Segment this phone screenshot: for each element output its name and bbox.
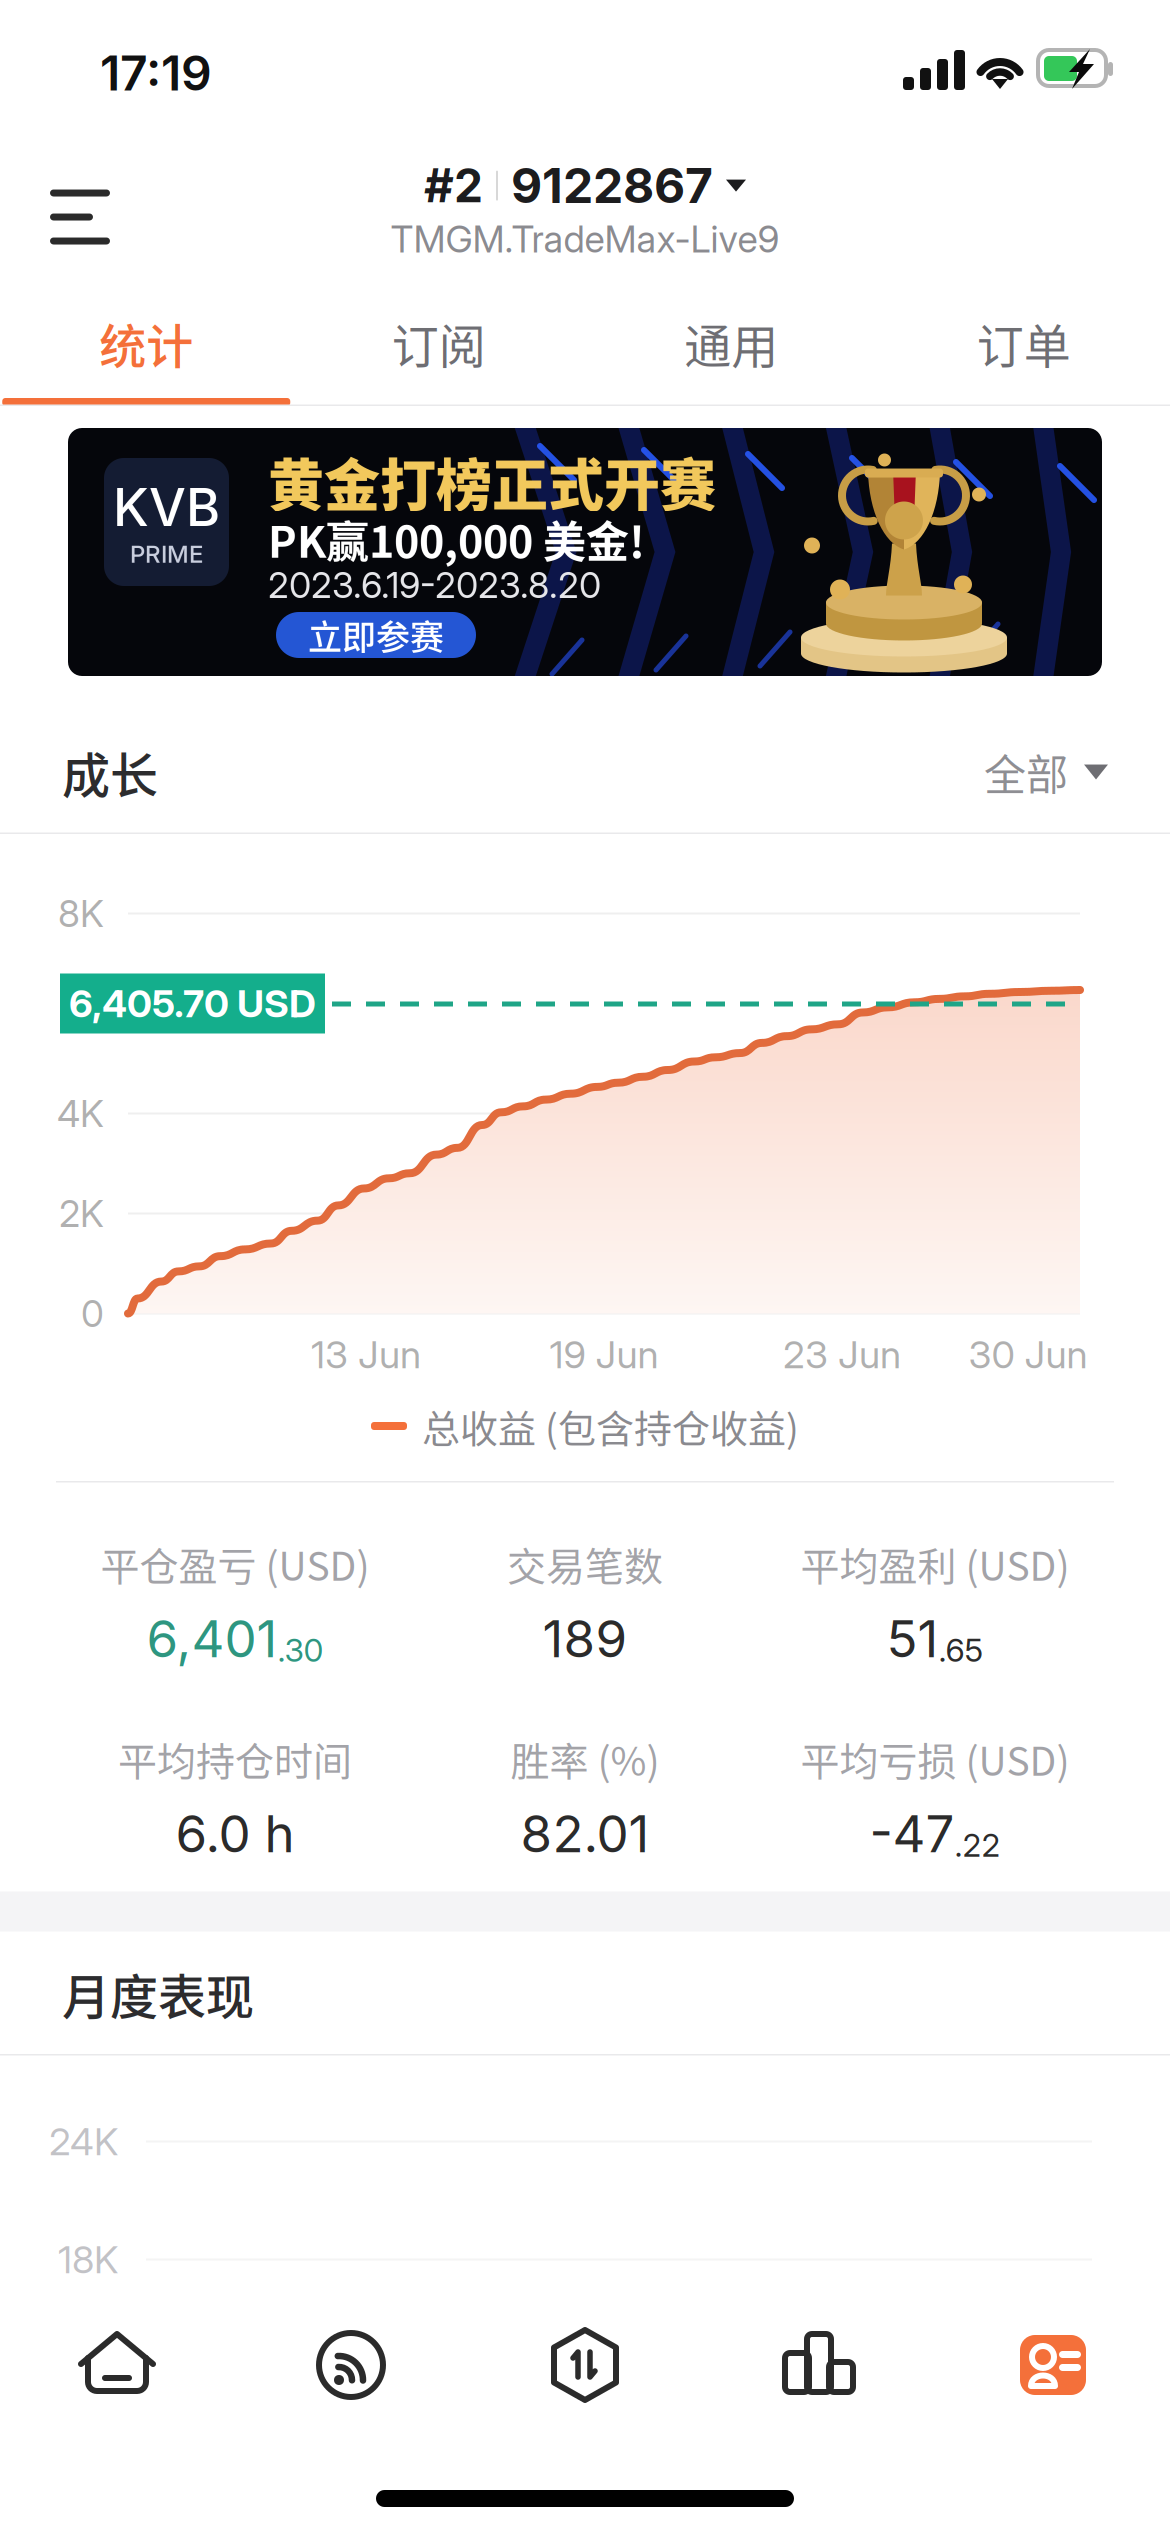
staticText: 6.0 h: [175, 1803, 294, 1865]
staticText: 平均盈利 (USD): [800, 1535, 1069, 1592]
button[interactable]: 订阅: [292, 288, 585, 406]
staticText: 18K: [58, 2236, 118, 2282]
staticText: 平均持仓时间: [118, 1730, 352, 1787]
staticText: TMGM.TradeMax-Live9: [390, 217, 779, 261]
button[interactable]: 统计: [0, 288, 292, 406]
staticText: 23 Jun: [783, 1331, 901, 1377]
button[interactable]: 订单: [877, 288, 1170, 406]
staticText: 0: [81, 1291, 104, 1336]
staticText: 胜率 (%): [510, 1730, 659, 1787]
staticText: 30 Jun: [968, 1331, 1087, 1377]
staticText: #2: [424, 158, 483, 213]
staticText: 189: [542, 1608, 627, 1670]
staticText: 平仓盈亏 (USD): [100, 1535, 369, 1592]
staticText: 月度表现: [62, 1959, 254, 2028]
staticText: 平均亏损 (USD): [800, 1730, 1069, 1787]
button[interactable]: Stats: [702, 2326, 936, 2404]
button[interactable]: 通用: [585, 288, 877, 406]
staticText: KVB: [113, 475, 220, 538]
staticText: 2023.6.19-2023.8.20: [268, 563, 601, 607]
staticText: .30: [277, 1631, 323, 1670]
staticText: 82.01: [520, 1803, 649, 1865]
staticText: 订单: [977, 309, 1071, 377]
staticText: PRIME: [130, 539, 203, 568]
staticText: 24K: [49, 2118, 118, 2164]
staticText: PK赢100,000 美金!: [268, 508, 645, 570]
staticText: .65: [938, 1631, 983, 1670]
button[interactable]: Account: [936, 2326, 1170, 2404]
staticText: 6,401: [146, 1608, 277, 1670]
staticText: 51: [886, 1608, 938, 1670]
staticText: 9122867: [511, 157, 713, 215]
staticText: 13 Jun: [311, 1331, 421, 1377]
staticText: 黄金打榜正式开赛: [268, 440, 716, 522]
button[interactable]: Signals: [234, 2326, 468, 2404]
staticText: 总收益 (包含持仓收益): [422, 1398, 799, 1453]
staticText: 交易笔数: [507, 1535, 663, 1592]
button[interactable]: Trade: [468, 2326, 702, 2404]
staticText: 统计: [99, 309, 193, 377]
staticText: -47: [869, 1803, 954, 1865]
staticText: .22: [954, 1826, 1000, 1865]
staticText: 8K: [58, 891, 104, 936]
staticText: 17:19: [100, 44, 212, 102]
staticText: 4K: [57, 1091, 104, 1136]
button[interactable]: Menu: [0, 143, 160, 275]
staticText: 全部: [984, 742, 1068, 802]
staticText: 6,405.70 USD: [69, 980, 316, 1026]
staticText: 通用: [684, 309, 778, 377]
staticText: 2K: [59, 1191, 104, 1236]
staticText: 订阅: [392, 309, 486, 377]
button[interactable]: 黄金打榜正式开赛 立即参赛: [0, 428, 1170, 676]
staticText: 成长: [62, 737, 158, 807]
staticText: 19 Jun: [549, 1331, 658, 1377]
button[interactable]: Home: [0, 2326, 234, 2404]
staticText: 立即参赛: [308, 610, 444, 660]
button[interactable]: 全部: [984, 742, 1108, 802]
